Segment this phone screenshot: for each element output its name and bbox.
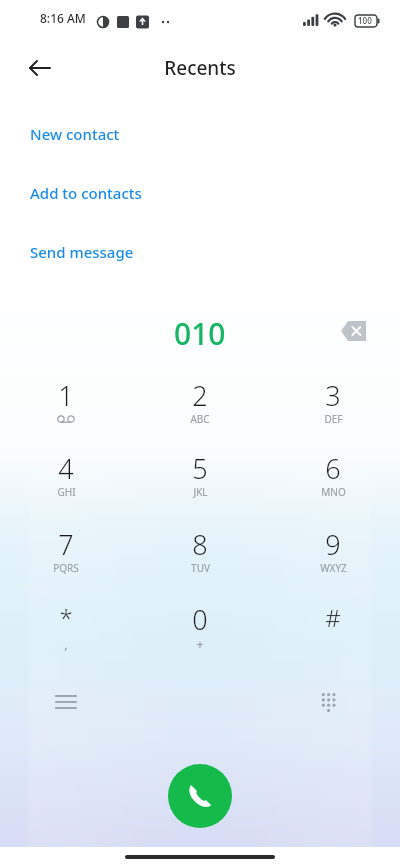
staticText: Send message: [30, 242, 134, 262]
staticText: *: [59, 601, 73, 634]
staticText: 5: [192, 450, 208, 487]
button[interactable]: Backspace: [333, 309, 377, 353]
staticText: 010: [174, 313, 226, 354]
staticText: 100: [358, 15, 372, 26]
button[interactable]: 5: [162, 450, 238, 508]
staticText: ,: [64, 635, 68, 653]
staticText: #: [325, 601, 341, 634]
button[interactable]: Add to contacts: [16, 181, 156, 205]
button[interactable]: *: [28, 601, 104, 659]
staticText: 4: [58, 450, 74, 487]
staticText: Add to contacts: [30, 183, 142, 203]
staticText: GHI: [57, 485, 76, 499]
button[interactable]: 1: [28, 377, 104, 435]
button[interactable]: 7: [28, 526, 104, 584]
button[interactable]: 8: [162, 526, 238, 584]
button[interactable]: New contact: [16, 122, 134, 146]
button[interactable]: Keypad: [308, 680, 352, 724]
staticText: 7: [58, 526, 74, 563]
button[interactable]: 2: [162, 377, 238, 435]
staticText: ABC: [190, 412, 210, 426]
staticText: 6: [325, 450, 341, 487]
staticText: 2: [192, 377, 208, 414]
button[interactable]: #: [295, 601, 371, 659]
staticText: TUV: [191, 561, 210, 575]
staticText: 3: [325, 377, 341, 414]
staticText: 0: [192, 601, 208, 638]
staticText: DEF: [324, 412, 343, 426]
button[interactable]: Send message: [16, 240, 148, 264]
staticText: JKL: [193, 485, 208, 499]
staticText: 8:16 AM: [40, 10, 86, 26]
button[interactable]: 3: [295, 377, 371, 435]
staticText: WXYZ: [320, 561, 347, 575]
staticText: 8: [192, 526, 208, 563]
button[interactable]: 4: [28, 450, 104, 508]
staticText: New contact: [30, 124, 120, 144]
staticText: Recents: [164, 55, 236, 81]
staticText: +: [196, 635, 204, 653]
button[interactable]: 0: [162, 601, 238, 659]
button[interactable]: More options: [44, 680, 88, 724]
staticText: 9: [325, 526, 341, 563]
button[interactable]: Back: [18, 46, 62, 90]
button[interactable]: 9: [295, 526, 371, 584]
staticText: MNO: [321, 485, 346, 499]
staticText: 1: [58, 377, 74, 414]
staticText: PQRS: [53, 561, 79, 575]
button[interactable]: 6: [295, 450, 371, 508]
button[interactable]: Call: [168, 764, 232, 828]
